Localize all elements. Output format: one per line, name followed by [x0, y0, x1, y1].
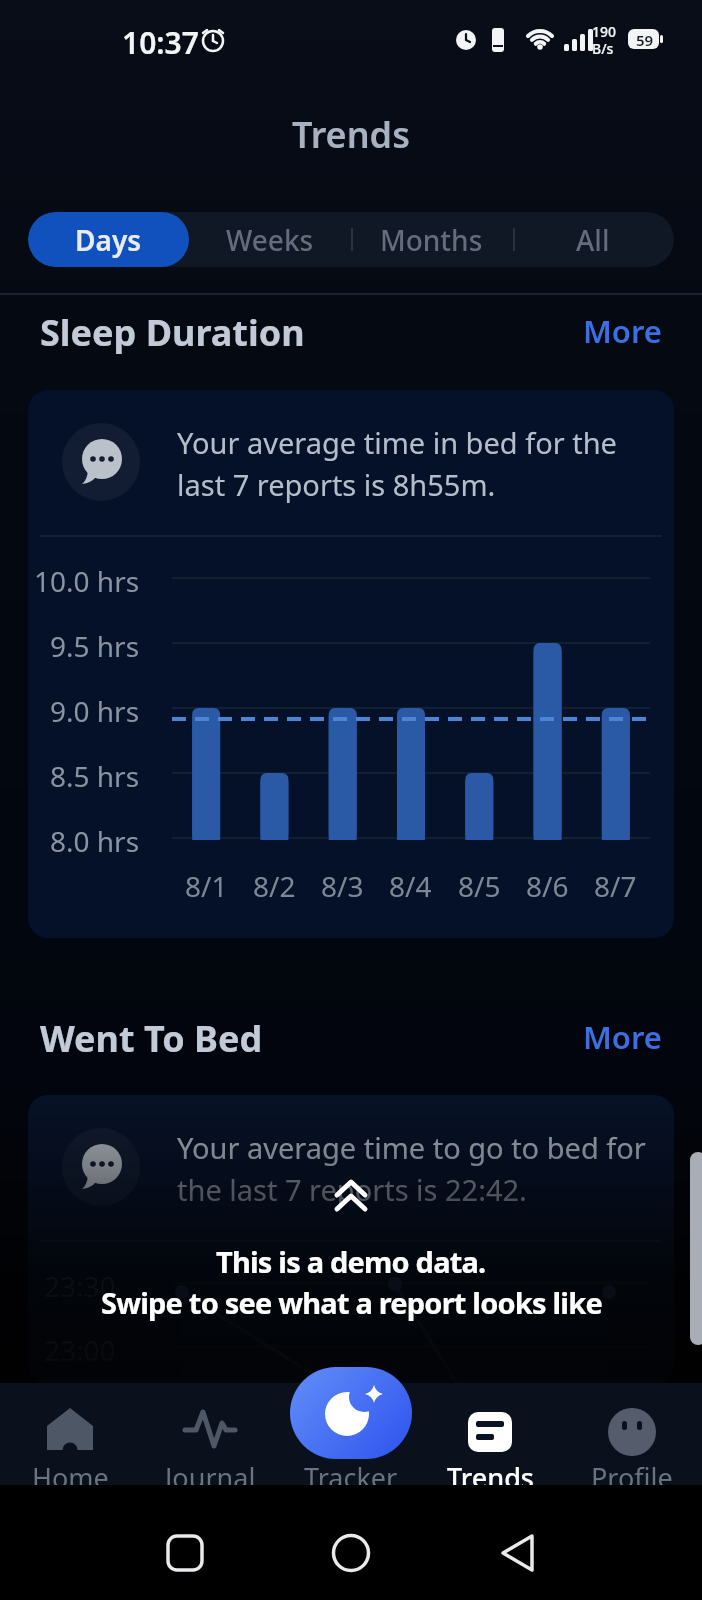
staticText: B/s [592, 39, 614, 58]
staticText: Months [380, 221, 483, 259]
staticText: 23:30 [44, 1267, 116, 1299]
button[interactable]: More [542, 310, 662, 352]
staticText: More [583, 1016, 662, 1058]
staticText: Trends [292, 110, 410, 159]
button[interactable]: Trends [434, 1395, 546, 1485]
staticText: Journal [165, 1459, 256, 1489]
staticText: This is a demo data. [216, 1242, 486, 1281]
staticText: 8/7 [594, 867, 637, 899]
button[interactable]: Days [28, 212, 189, 267]
button[interactable]: Weeks [189, 212, 350, 267]
staticText: Swipe to see what a report looks like [101, 1283, 602, 1322]
button[interactable]: Profile [576, 1395, 688, 1485]
staticText: 8.0 hrs [50, 822, 140, 854]
staticText: More [583, 310, 662, 352]
staticText: 8/4 [389, 867, 432, 899]
staticText: Profile [591, 1459, 673, 1489]
staticText: Went To Bed [40, 1014, 263, 1060]
button[interactable]: Months [350, 212, 512, 267]
staticText: 8/1 [185, 867, 228, 899]
staticText: Days [75, 221, 142, 259]
button[interactable]: Home [14, 1395, 126, 1485]
staticText: 8/2 [253, 867, 296, 899]
staticText: Trends [447, 1459, 534, 1489]
staticText: All [576, 221, 610, 259]
staticText: 8/3 [321, 867, 364, 899]
staticText: the last 7 reports is 22:42. [177, 1170, 527, 1209]
staticText: 8.5 hrs [50, 757, 140, 789]
staticText: Your average time to go to bed for [177, 1128, 646, 1167]
button[interactable] [290, 1367, 412, 1459]
staticText: Weeks [226, 221, 314, 259]
staticText: 59 [636, 30, 654, 50]
staticText: 10:37 [122, 22, 199, 58]
button[interactable]: All [512, 212, 674, 267]
staticText: 10.0 hrs [34, 562, 140, 594]
staticText: 9.5 hrs [50, 627, 140, 659]
staticText: 8/6 [526, 867, 569, 899]
button[interactable]: More [542, 1016, 662, 1058]
staticText: Tracker [304, 1459, 398, 1489]
staticText: Your average time in bed for the last 7 … [177, 423, 617, 504]
staticText: 9.0 hrs [50, 692, 140, 724]
staticText: 190 [592, 22, 617, 41]
staticText: 8/5 [458, 867, 501, 899]
staticText: Home [32, 1459, 109, 1489]
staticText: Sleep Duration [40, 308, 305, 354]
button[interactable]: Journal [154, 1395, 266, 1485]
